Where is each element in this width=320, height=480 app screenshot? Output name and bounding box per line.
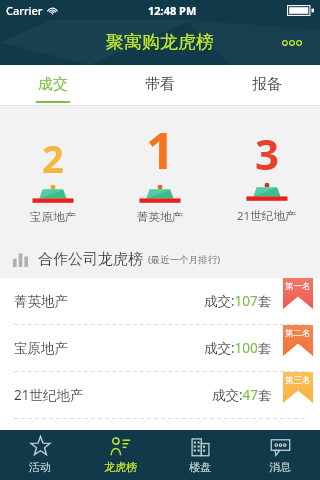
staticText: 成交:107套 (204, 292, 272, 310)
button[interactable]: 成交 (0, 65, 106, 106)
button[interactable]: 菁英地产 (0, 278, 320, 324)
staticText: 聚寓购龙虎榜 (106, 31, 214, 54)
staticText: 3 (255, 125, 280, 182)
staticText: 宝原地产 (30, 210, 76, 224)
staticText: 第二名 (285, 328, 311, 339)
staticText: Carrier (6, 3, 43, 18)
staticText: 第三名 (285, 375, 311, 386)
staticText: 12:48 PM (148, 3, 197, 18)
staticText: 菁英地产 (14, 293, 68, 310)
button[interactable]: 带看 (106, 65, 213, 106)
button[interactable]: More options (272, 23, 312, 63)
staticText: 活动 (29, 460, 51, 474)
staticText: 消息 (269, 460, 291, 474)
staticText: 成交 (38, 75, 68, 94)
staticText: 2 (42, 132, 64, 184)
staticText: (最近一个月排行) (148, 253, 221, 266)
button[interactable]: 消息 (240, 430, 320, 480)
button[interactable]: 2 (0, 106, 106, 240)
button[interactable]: 宝原地产 (0, 325, 320, 371)
staticText: 成交:47套 (212, 386, 272, 404)
staticText: 第一名 (285, 281, 311, 292)
staticText: 合作公司龙虎榜 (38, 250, 143, 269)
staticText: 1 (146, 116, 175, 184)
button[interactable]: 楼盘 (160, 430, 240, 480)
button[interactable]: 21世纪地产 (0, 372, 320, 418)
staticText: 龙虎榜 (104, 460, 137, 474)
staticText: 成交:100套 (204, 339, 272, 357)
button[interactable]: 1 (106, 106, 213, 240)
staticText: 21世纪地产 (14, 386, 84, 404)
button[interactable]: 活动 (0, 430, 80, 480)
staticText: 楼盘 (189, 460, 211, 474)
staticText: 宝原地产 (14, 340, 68, 357)
button[interactable]: 报备 (213, 65, 320, 106)
button[interactable]: 龙虎榜 (80, 430, 160, 480)
staticText: 报备 (252, 75, 282, 94)
staticText: 21世纪地产 (237, 208, 297, 224)
staticText: 带看 (145, 75, 175, 94)
staticText: 菁英地产 (137, 210, 183, 224)
button[interactable]: 3 (213, 106, 320, 240)
